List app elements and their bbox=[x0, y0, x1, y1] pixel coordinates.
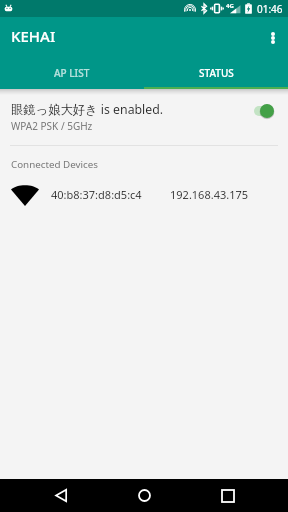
button[interactable]: 眼鏡っ娘大好き is enabled. bbox=[0, 89, 288, 145]
button[interactable]: Wi-Fi hotspot toggle bbox=[249, 101, 275, 121]
staticText: 192.168.43.175 bbox=[170, 187, 249, 202]
button[interactable]: More options bbox=[258, 17, 288, 58]
staticText: 01:46 bbox=[257, 2, 283, 16]
button[interactable]: STATUS bbox=[144, 58, 288, 89]
button[interactable]: Recent apps bbox=[205, 479, 251, 512]
button[interactable]: 40:b8:37:d8:d5:c4 bbox=[0, 171, 288, 213]
staticText: STATUS bbox=[199, 66, 234, 80]
staticText: 眼鏡っ娘大好き is enabled. bbox=[11, 101, 164, 118]
staticText: WPA2 PSK / 5GHz bbox=[11, 119, 93, 133]
button[interactable]: AP LIST bbox=[0, 58, 144, 89]
staticText: AP LIST bbox=[54, 66, 90, 80]
button[interactable]: Home bbox=[121, 479, 167, 512]
staticText: 40:b8:37:d8:d5:c4 bbox=[51, 187, 142, 202]
button[interactable]: Back bbox=[38, 479, 84, 512]
staticText: Connected Devices bbox=[11, 158, 98, 171]
staticText: KEHAI bbox=[11, 26, 56, 46]
staticText: 4G bbox=[226, 2, 234, 10]
